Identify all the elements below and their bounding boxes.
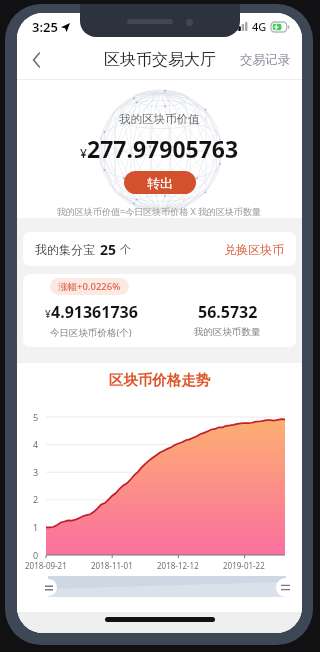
staticText: 我的区块币价值 xyxy=(119,112,200,126)
staticText: ¥ xyxy=(45,307,51,321)
staticText: 2018-09-21 xyxy=(25,560,67,571)
button[interactable]: 我的集分宝 xyxy=(23,232,296,266)
staticText: 25 xyxy=(100,240,117,259)
button[interactable]: 兑换区块币 xyxy=(216,236,292,263)
staticText: 转出 xyxy=(147,175,173,191)
staticText: 0 xyxy=(33,549,39,561)
button[interactable]: 转出 xyxy=(124,171,196,194)
staticText: 区块币交易大厅 xyxy=(104,50,216,70)
staticText: 区块币价格走势 xyxy=(17,371,302,389)
staticText: 个 xyxy=(120,242,131,256)
staticText: 交易记录 xyxy=(240,52,290,68)
staticText: 56.5732 xyxy=(198,301,258,323)
staticText: 我的集分宝 xyxy=(35,242,95,257)
staticText: 今日区块币价格(个) xyxy=(50,326,132,339)
staticText: 4G xyxy=(252,19,267,34)
staticText: 3 xyxy=(33,466,39,478)
button[interactable]: 交易记录 xyxy=(228,40,302,79)
staticText: 2018-11-01 xyxy=(91,560,133,571)
staticText: 我的区块币价值=今日区块币价格 X 我的区块币数量 xyxy=(57,205,262,217)
button[interactable]: Range end xyxy=(276,578,295,597)
staticText: 3:25 xyxy=(32,18,58,36)
button[interactable]: Back xyxy=(17,40,55,79)
button[interactable]: Range start xyxy=(40,579,57,596)
staticText: 4 xyxy=(33,438,39,450)
staticText: 1 xyxy=(33,521,39,533)
staticText: 我的区块币数量 xyxy=(194,326,261,338)
staticText: 4.91361736 xyxy=(51,301,138,323)
staticText: 涨幅+0.0226% xyxy=(58,280,121,293)
staticText: 2018-12-12 xyxy=(157,560,199,571)
staticText: 277.97905763 xyxy=(87,133,239,164)
staticText: ¥ xyxy=(80,145,87,161)
staticText: 2019-01-22 xyxy=(223,560,265,571)
staticText: 2 xyxy=(33,493,39,505)
staticText: 兑换区块币 xyxy=(224,242,284,257)
staticText: 5 xyxy=(33,411,39,423)
